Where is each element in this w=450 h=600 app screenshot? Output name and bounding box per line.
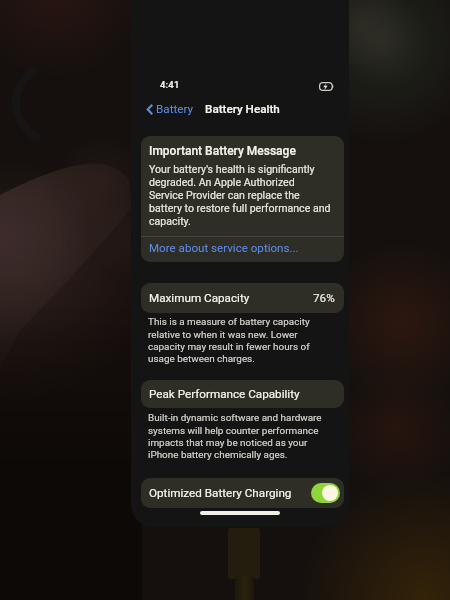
staticText: Battery <box>156 102 194 116</box>
button[interactable]: More about service options... <box>141 237 344 262</box>
button[interactable]: Battery <box>145 100 196 118</box>
staticText: Maximum Capacity <box>149 291 250 305</box>
staticText: Battery Health <box>205 102 280 116</box>
staticText: This is a measure of battery capacity re… <box>148 316 338 364</box>
staticText: Built-in dynamic software and hardware s… <box>148 412 338 460</box>
staticText: 4:41 <box>160 79 180 90</box>
staticText: More about service options... <box>149 241 299 255</box>
staticText: 76% <box>313 291 335 305</box>
button[interactable]: Peak Performance Capability <box>141 380 344 408</box>
button[interactable]: Optimized Battery Charging toggle <box>311 483 340 503</box>
staticText: Peak Performance Capability <box>149 387 300 401</box>
staticText: Optimized Battery Charging <box>149 486 292 500</box>
button[interactable]: Optimized Battery Charging <box>141 478 344 508</box>
button[interactable]: Maximum Capacity <box>141 283 344 313</box>
staticText: Important Battery Message <box>149 144 296 158</box>
staticText: Your battery's health is significantly d… <box>149 163 331 228</box>
